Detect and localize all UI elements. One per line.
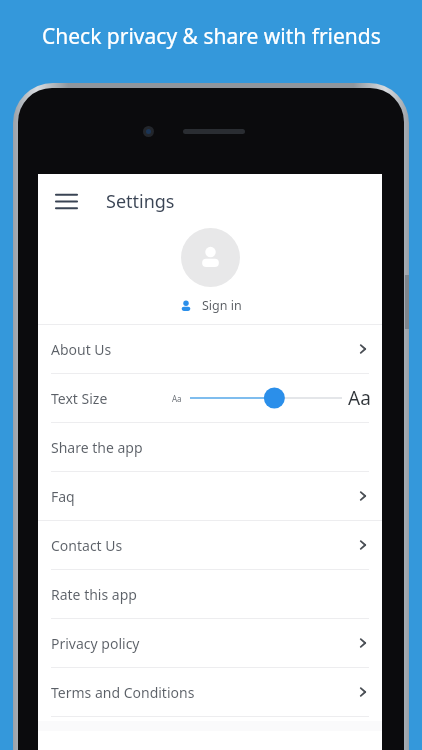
staticText: Rate this app [51,585,137,604]
staticText: Terms and Conditions [51,683,195,702]
staticText: Aa [172,393,182,404]
button[interactable]: Rate this app [38,570,382,618]
staticText: Aa [348,385,371,411]
button[interactable]: Contact Us [38,521,382,569]
staticText: Faq [51,487,75,506]
button[interactable]: Privacy policy [38,619,382,667]
button[interactable]: Profile photo [181,228,240,287]
staticText: Contact Us [51,536,123,555]
staticText: Check privacy & share with friends [42,22,381,51]
button[interactable]: Text size slider [190,385,342,411]
button[interactable]: Faq [38,472,382,520]
button[interactable]: Open navigation menu [46,181,86,221]
button[interactable]: Terms and Conditions [38,668,382,716]
button[interactable]: About Us [38,325,382,373]
staticText: Privacy policy [51,634,140,653]
staticText: About Us [51,340,112,359]
staticText: Settings [106,189,175,214]
staticText: Text Size [51,389,108,408]
staticText: Sign in [202,297,242,314]
staticText: Share the app [51,438,143,457]
button[interactable]: Sign in [169,294,252,317]
button[interactable]: Share the app [38,423,382,471]
